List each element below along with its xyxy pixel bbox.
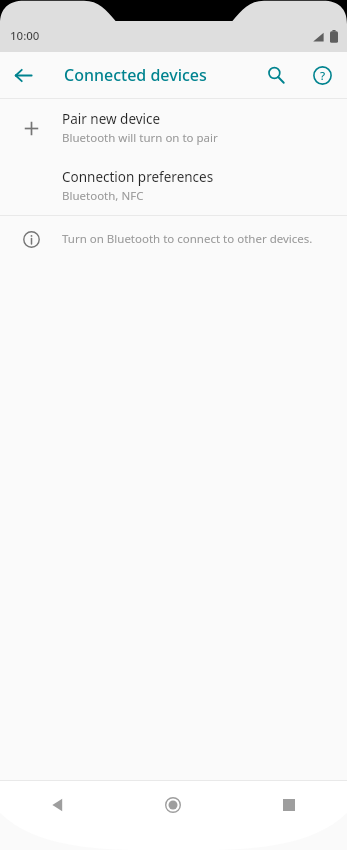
button[interactable]: Turn on Bluetooth to connect to other de… [0, 216, 347, 262]
staticText: 10:00 [10, 28, 40, 44]
button[interactable]: Connection preferences [0, 157, 347, 215]
button[interactable]: Search [253, 52, 299, 98]
button[interactable]: Help [299, 52, 345, 98]
staticText: Connection preferences [62, 168, 214, 186]
staticText: Bluetooth, NFC [62, 188, 144, 204]
staticText: ? [320, 68, 326, 84]
button[interactable]: Back [0, 780, 115, 830]
staticText: Bluetooth will turn on to pair [62, 130, 218, 146]
button[interactable]: Navigate up [0, 52, 46, 98]
staticText: Turn on Bluetooth to connect to other de… [62, 231, 313, 247]
button[interactable]: Home [115, 780, 231, 830]
button[interactable]: Recent apps [231, 780, 347, 830]
button[interactable]: Pair new device [0, 99, 347, 157]
staticText: Pair new device [62, 110, 161, 128]
staticText: Connected devices [64, 64, 207, 86]
